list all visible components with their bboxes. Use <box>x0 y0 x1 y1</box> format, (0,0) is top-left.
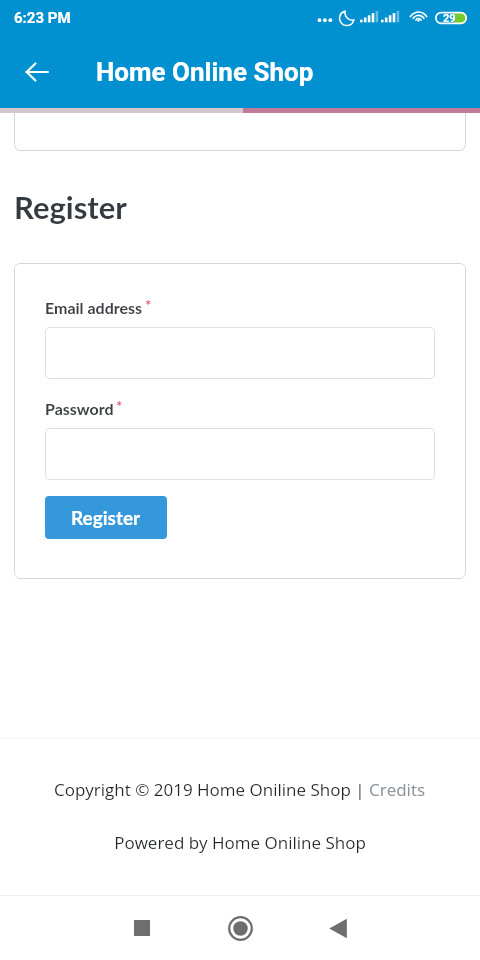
staticText: Password <box>45 399 114 418</box>
staticText: 29 <box>443 12 456 25</box>
button[interactable]: Credits <box>369 778 426 801</box>
staticText: Home Online Shop <box>96 57 314 87</box>
button[interactable]: Back <box>307 897 369 959</box>
staticText: Register <box>14 188 127 225</box>
button[interactable]: Register <box>45 496 167 539</box>
staticText: Powered by Home Oniline Shop <box>0 831 480 854</box>
staticText: 6:23 PM <box>14 9 71 27</box>
button[interactable]: Recent apps <box>111 897 173 959</box>
button[interactable] <box>45 327 435 379</box>
staticText: Copyright © 2019 Home Oniline Shop | <box>54 778 369 801</box>
button[interactable]: Home <box>209 897 271 959</box>
staticText: Email address <box>45 298 143 317</box>
staticText: * <box>116 397 123 415</box>
staticText: * <box>145 296 152 314</box>
button[interactable] <box>45 428 435 480</box>
button[interactable]: Back <box>13 48 61 96</box>
staticText: Register <box>71 506 141 529</box>
